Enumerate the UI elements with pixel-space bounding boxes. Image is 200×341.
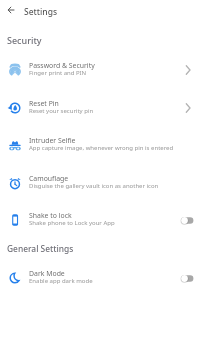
button[interactable]: Back bbox=[1, 0, 20, 19]
staticText: Security bbox=[7, 34, 42, 46]
button[interactable]: Dark Mode bbox=[0, 267, 200, 289]
staticText: Password & Security bbox=[29, 61, 95, 70]
staticText: Enable app dark mode bbox=[29, 277, 93, 285]
button[interactable]: Shake to lock bbox=[0, 209, 200, 231]
staticText: General Settings bbox=[7, 243, 74, 254]
staticText: Disguise the gallery vault icon as anoth… bbox=[29, 182, 159, 190]
staticText: Settings bbox=[24, 6, 58, 18]
staticText: Shake phone to Lock your App bbox=[29, 219, 115, 227]
button[interactable]: Reset Pin bbox=[0, 97, 200, 119]
staticText: Finger print and PIN bbox=[29, 69, 87, 77]
staticText: Camouflage bbox=[29, 174, 69, 183]
button[interactable]: Toggle bbox=[175, 213, 200, 227]
staticText: Reset Pin bbox=[29, 99, 59, 108]
button[interactable]: Password & Security bbox=[0, 59, 200, 81]
staticText: Shake to lock bbox=[29, 211, 72, 220]
button[interactable]: Intruder Selfie bbox=[0, 134, 200, 156]
button[interactable]: Camouflage bbox=[0, 172, 200, 194]
button[interactable]: Toggle bbox=[175, 271, 200, 285]
staticText: Intruder Selfie bbox=[29, 136, 76, 145]
staticText: Dark Mode bbox=[29, 269, 65, 278]
staticText: App capture image, whenever wrong pin is… bbox=[29, 144, 174, 152]
staticText: Reset your security pin bbox=[29, 107, 94, 115]
